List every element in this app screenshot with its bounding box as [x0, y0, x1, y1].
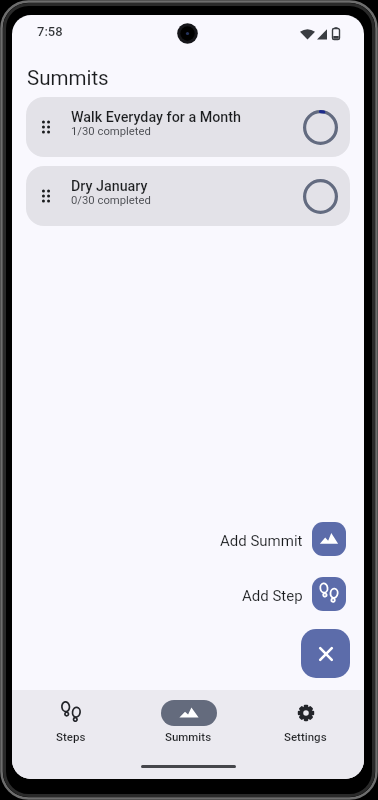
staticText: Summits: [27, 66, 109, 90]
staticText: Add Summit: [220, 532, 303, 550]
button[interactable]: Dry January: [26, 166, 350, 226]
button[interactable]: Steps: [12, 700, 130, 743]
staticText: 1/30 completed: [71, 125, 151, 138]
button[interactable]: Summits: [130, 700, 247, 743]
staticText: 0/30 completed: [71, 194, 151, 207]
staticText: Dry January: [71, 178, 148, 195]
button[interactable]: [301, 629, 350, 678]
button[interactable]: Walk Everyday for a Month: [26, 97, 350, 157]
button[interactable]: Settings: [247, 700, 364, 743]
staticText: Steps: [56, 730, 86, 743]
staticText: 7:58: [37, 24, 63, 39]
staticText: Summits: [165, 730, 212, 743]
staticText: Settings: [284, 730, 327, 743]
staticText: Walk Everyday for a Month: [71, 109, 241, 126]
button[interactable]: [312, 522, 346, 556]
staticText: Add Step: [242, 587, 303, 605]
button[interactable]: [312, 577, 346, 611]
